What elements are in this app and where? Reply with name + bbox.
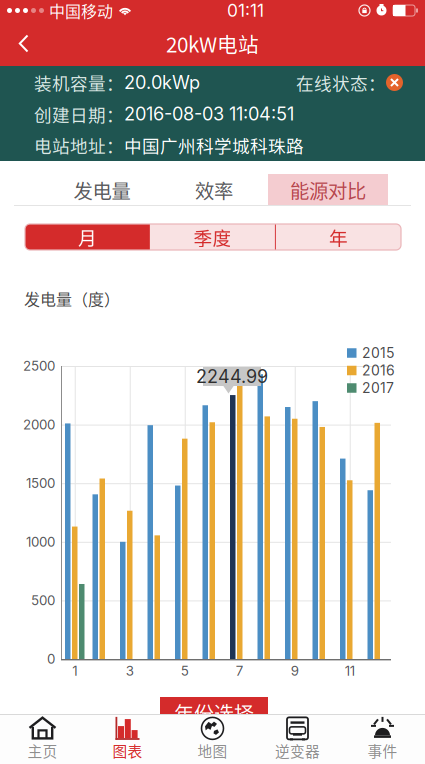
staticText: 效率 (195, 176, 233, 204)
staticText: 季度 (193, 223, 231, 250)
button[interactable]: 能源对比 (268, 174, 388, 206)
staticText: 01:11 (227, 0, 264, 21)
button[interactable]: 季度 (150, 224, 275, 250)
staticText: 3 (126, 663, 134, 679)
staticText: 发电量 (73, 176, 130, 204)
staticText: 2244.99 (196, 366, 268, 387)
staticText: 2000 (23, 416, 55, 433)
staticText: 1 (72, 663, 77, 679)
staticText: 在线状态： (296, 70, 386, 95)
button[interactable]: 年 (276, 224, 401, 250)
button[interactable]: 年份选择 (160, 697, 268, 729)
staticText: 0 (47, 651, 55, 667)
staticText: 2016-08-03 11:04:51 (124, 103, 294, 125)
staticText: 5 (181, 663, 189, 679)
staticText: 500 (31, 592, 55, 608)
button[interactable]: 发电量 (59, 174, 145, 206)
staticText: 月 (78, 223, 97, 250)
staticText: 9 (291, 663, 299, 679)
staticText: 年份选择 (174, 698, 254, 727)
staticText: 发电量（度） (24, 287, 120, 310)
staticText: 20.0kWp (124, 71, 200, 93)
button[interactable]: 效率 (184, 174, 244, 206)
staticText: 主页 (27, 740, 57, 761)
staticText: 2017 (362, 379, 394, 396)
button[interactable]: 地图 (170, 714, 255, 764)
staticText: 2016 (362, 362, 395, 379)
button[interactable]: 图表 (85, 714, 170, 764)
staticText: 7 (236, 663, 244, 679)
staticText: 装机容量： (34, 70, 124, 95)
staticText: 中国广州科学城科珠路 (124, 132, 304, 158)
staticText: 电站地址： (34, 132, 124, 158)
staticText: 创建日期： (34, 101, 124, 127)
button[interactable]: 逆变器 (255, 714, 340, 764)
staticText: 年 (329, 223, 348, 250)
staticText: 事件 (367, 740, 397, 761)
staticText: 地图 (197, 740, 227, 761)
staticText: 能源对比 (290, 176, 366, 204)
staticText: 中国移动 (49, 0, 113, 22)
staticText: 11 (345, 663, 355, 679)
button[interactable]: 月 (25, 224, 150, 250)
staticText: 1000 (26, 534, 55, 550)
staticText: 1500 (26, 475, 55, 491)
staticText: 2015 (362, 344, 395, 361)
staticText: 图表 (112, 740, 142, 761)
staticText: 2500 (23, 358, 55, 374)
button[interactable]: 主页 (0, 714, 85, 764)
staticText: 20kW电站 (166, 28, 259, 58)
button[interactable]: 事件 (340, 714, 425, 764)
button[interactable]: Back (0, 21, 44, 66)
staticText: 逆变器 (275, 740, 320, 761)
